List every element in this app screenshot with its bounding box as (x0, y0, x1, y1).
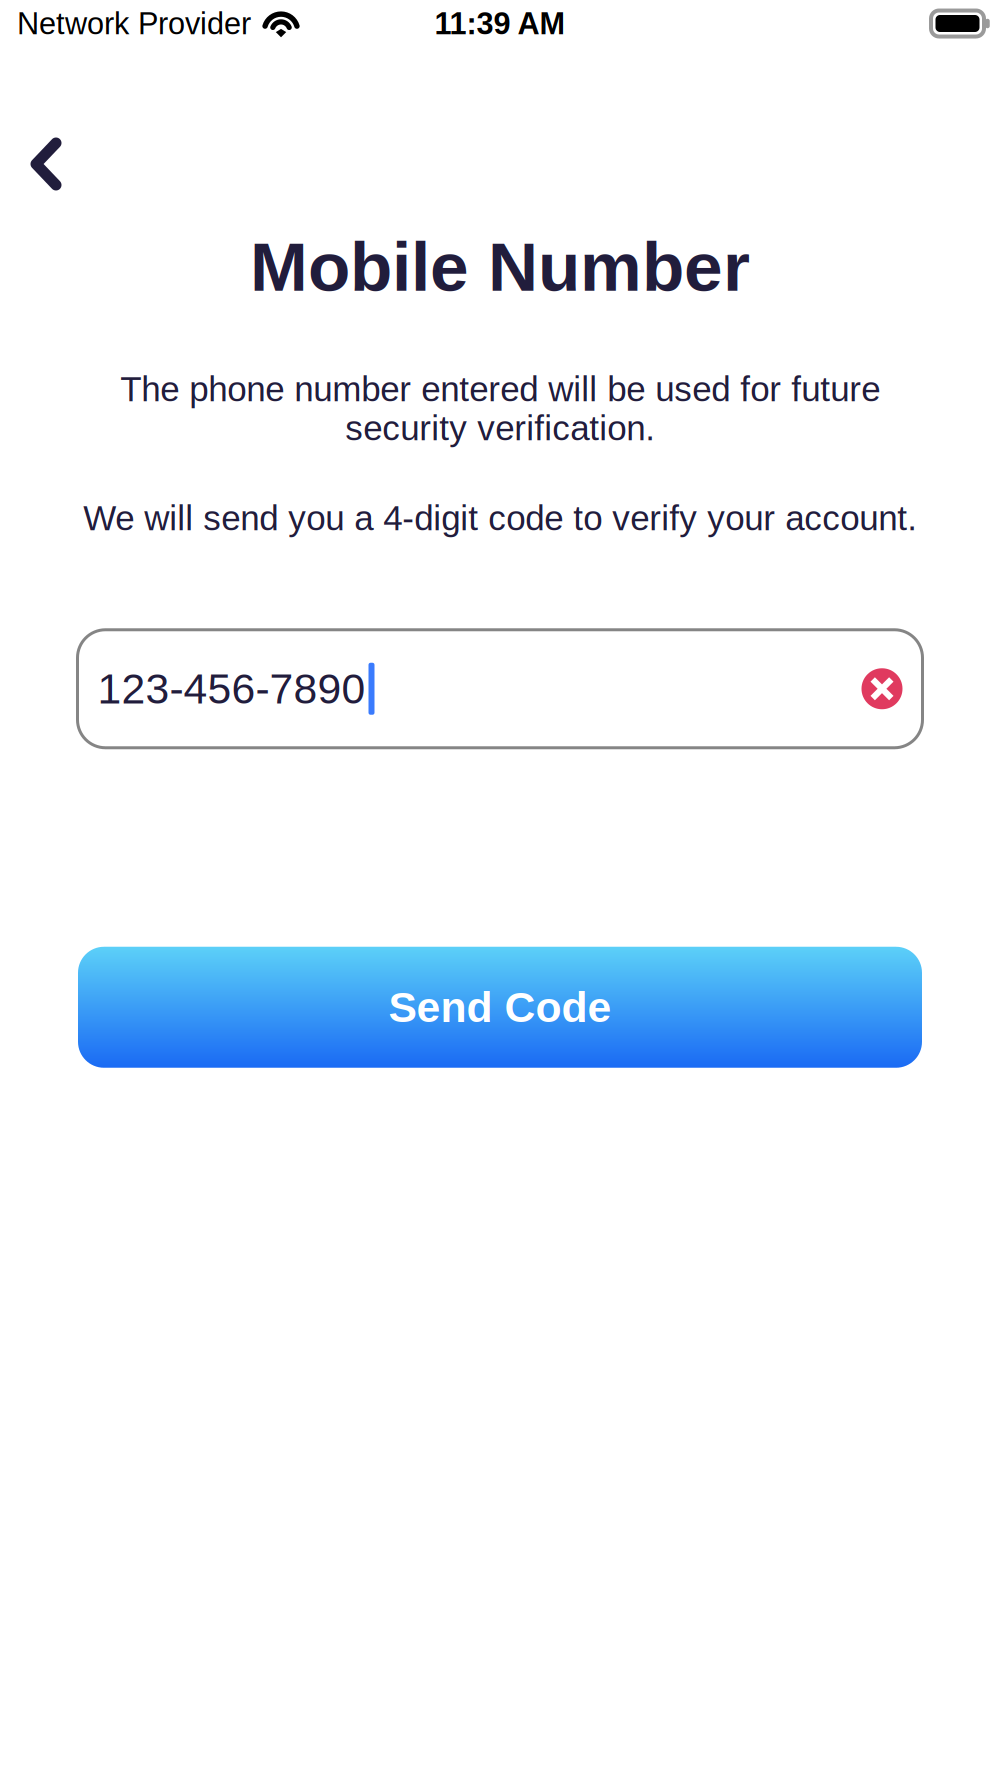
staticText: Network Provider (17, 6, 251, 41)
button[interactable]: Send Code (78, 947, 922, 1068)
staticText: Mobile Number (250, 228, 750, 305)
button[interactable]: Clear text (861, 668, 902, 709)
staticText: 11:39 AM (434, 6, 565, 41)
staticText: The phone number entered will be used fo… (120, 369, 880, 448)
staticText: 123-456-7890 (97, 665, 365, 713)
button[interactable]: 123-456-7890 (77, 630, 922, 748)
staticText: We will send you a 4-digit code to verif… (83, 499, 917, 538)
staticText: Send Code (388, 983, 611, 1031)
button[interactable]: Back (0, 121, 88, 207)
